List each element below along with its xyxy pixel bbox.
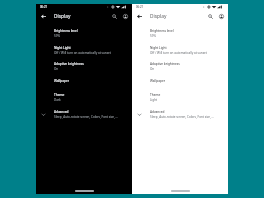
staticText: Wallpaper	[54, 79, 69, 83]
button[interactable]: Wallpaper	[36, 74, 132, 87]
staticText: Display	[54, 13, 71, 20]
staticText: Theme	[150, 93, 161, 97]
staticText: Adaptive brightness	[150, 62, 180, 66]
button[interactable]: Advanced	[132, 106, 228, 123]
staticText: Theme	[54, 93, 65, 97]
button[interactable]: Adaptive brightness	[36, 58, 132, 75]
staticText: Advanced	[150, 110, 165, 114]
staticText: Night Light	[150, 46, 167, 50]
button[interactable]: Theme	[36, 89, 132, 106]
button[interactable]: Search	[110, 12, 119, 21]
staticText: 59%	[150, 34, 156, 38]
button[interactable]: Search	[206, 12, 215, 21]
staticText: Adaptive brightness	[54, 62, 84, 66]
button[interactable]: Brightness level	[132, 25, 228, 42]
button[interactable]: Night Light	[36, 42, 132, 59]
staticText: 59%	[54, 34, 60, 38]
staticText: On	[54, 67, 59, 71]
button[interactable]: Brightness level	[36, 25, 132, 42]
button[interactable]: Navigate up	[39, 12, 48, 21]
staticText: Off / Will turn on automatically at suns…	[54, 51, 111, 55]
button[interactable]: Advanced	[36, 106, 132, 123]
staticText: Display	[150, 13, 167, 20]
staticText: Sleep, Auto-rotate screen, Colors, Font …	[150, 115, 215, 119]
button[interactable]: Account	[217, 12, 226, 21]
staticText: Advanced	[54, 110, 69, 114]
button[interactable]: Account	[121, 12, 130, 21]
staticText: Brightness level	[150, 29, 174, 33]
button[interactable]: Wallpaper	[132, 74, 228, 87]
button[interactable]: Theme	[132, 89, 228, 106]
staticText: On	[150, 67, 155, 71]
staticText: Night Light	[54, 46, 71, 50]
staticText: 06:21	[136, 5, 144, 9]
staticText: Sleep, Auto-rotate screen, Colors, Font …	[54, 115, 119, 119]
button[interactable]: Adaptive brightness	[132, 58, 228, 75]
staticText: Dark	[54, 98, 61, 102]
button[interactable]: Navigate up	[135, 12, 144, 21]
staticText: Off / Will turn on automatically at suns…	[150, 51, 207, 55]
button[interactable]: Night Light	[132, 42, 228, 59]
staticText: Brightness level	[54, 29, 78, 33]
staticText: Light	[150, 98, 158, 102]
staticText: Wallpaper	[150, 79, 165, 83]
staticText: 06:21	[40, 5, 48, 9]
